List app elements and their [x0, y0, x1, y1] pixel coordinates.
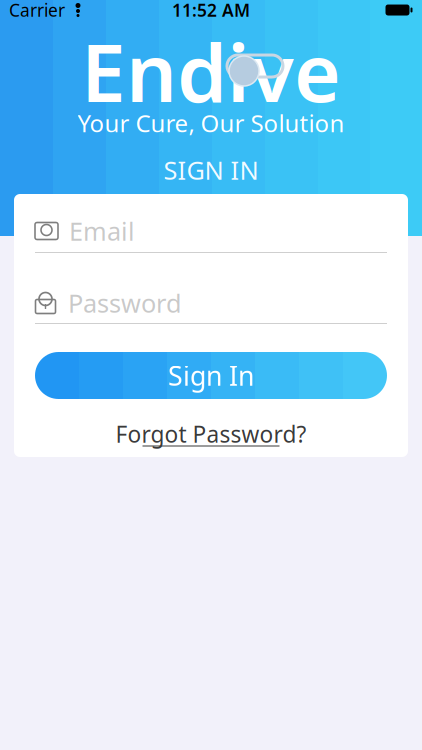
staticText: SIGN IN [163, 153, 258, 187]
staticText: Forgot Password? [115, 419, 306, 449]
staticText: Your Cure, Our Solution [77, 107, 344, 139]
button[interactable]: Sign In [35, 352, 387, 399]
staticText: Email [69, 214, 135, 248]
staticText: Carrier [9, 0, 65, 21]
staticText: Password [68, 286, 182, 320]
staticText: Sign In [168, 358, 254, 393]
staticText: 11:52 AM [172, 0, 250, 21]
button[interactable]: Forgot Password? [14, 422, 408, 448]
staticText: Endive [81, 18, 341, 124]
